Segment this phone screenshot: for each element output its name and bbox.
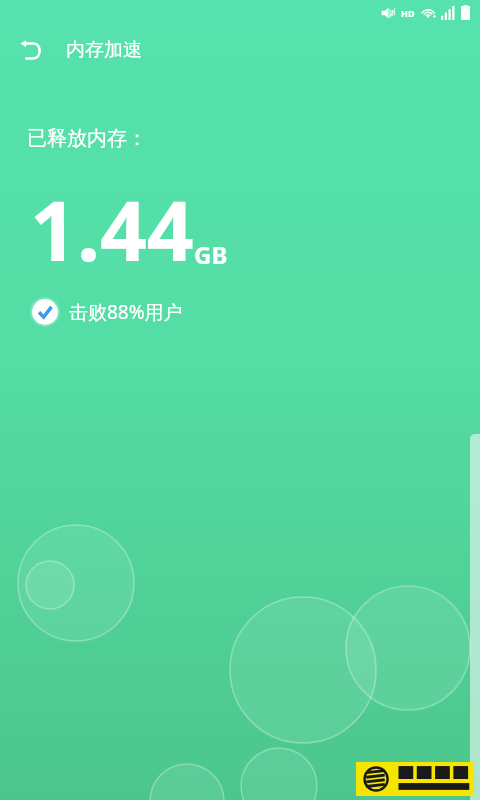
staticText: HD	[401, 7, 415, 19]
button[interactable]: Back	[10, 29, 52, 71]
staticText: 1.44	[30, 173, 194, 285]
staticText: 已释放内存：	[27, 126, 147, 151]
staticText: GB	[194, 238, 228, 271]
staticText: 内存加速	[66, 38, 142, 62]
staticText: 击败88%用户	[69, 299, 183, 325]
